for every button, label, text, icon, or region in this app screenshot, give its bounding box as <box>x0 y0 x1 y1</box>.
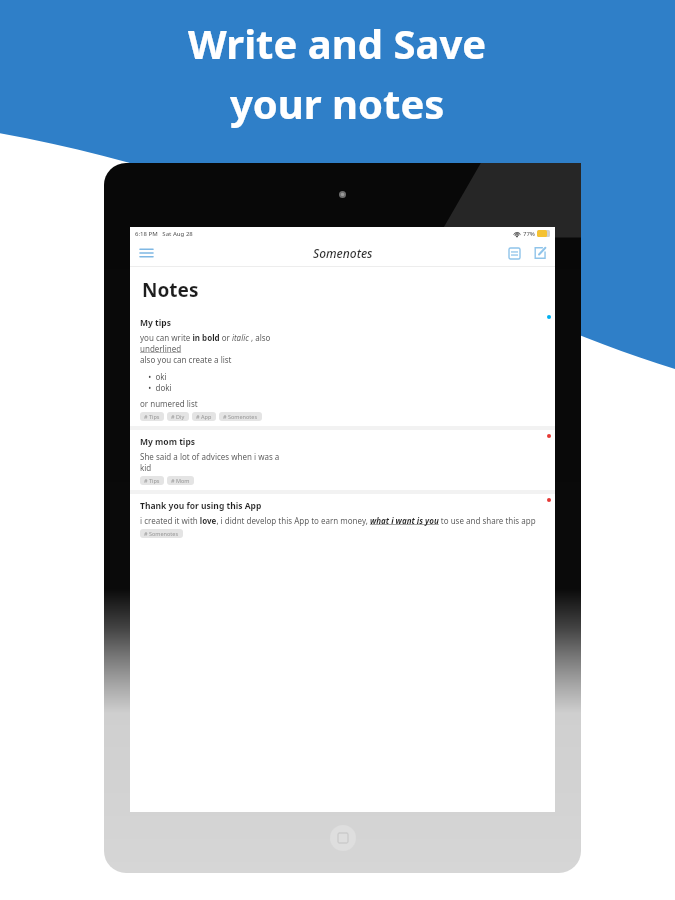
button[interactable]: New note <box>530 243 550 263</box>
staticText: Somenotes <box>313 245 373 261</box>
staticText: also you can create a list <box>140 354 232 365</box>
staticText: you can write in bold or italic , also <box>140 332 271 343</box>
button[interactable]: Thank you for using this App <box>130 494 555 543</box>
staticText: Write and Save <box>188 16 487 70</box>
button[interactable]: My tips <box>130 311 555 426</box>
staticText: • oki <box>140 371 167 382</box>
button[interactable]: # Somenotes <box>140 529 183 538</box>
staticText: underlined <box>140 343 182 354</box>
staticText: # Somenotes <box>223 413 258 420</box>
staticText: My tips <box>140 317 171 329</box>
staticText: # Mom <box>171 477 190 484</box>
staticText: or numered list <box>140 398 198 409</box>
staticText: Thank you for using this App <box>140 500 262 512</box>
button[interactable]: List view <box>504 243 524 263</box>
staticText: i created it with love, i didnt develop … <box>140 515 536 526</box>
staticText: # Somenotes <box>144 530 179 537</box>
button[interactable]: # Mom <box>167 476 194 485</box>
staticText: Notes <box>142 277 199 303</box>
button[interactable]: Home <box>330 825 356 851</box>
button[interactable]: # Tips <box>140 476 164 485</box>
button[interactable]: My mom tips <box>130 430 555 490</box>
staticText: 6:18 PM Sat Aug 28 <box>135 230 193 238</box>
button[interactable]: # App <box>192 412 216 421</box>
staticText: kid <box>140 462 152 473</box>
button[interactable]: # Diy <box>167 412 189 421</box>
staticText: She said a lot of advices when i was a <box>140 451 280 462</box>
staticText: # Tips <box>144 477 160 484</box>
staticText: your notes <box>230 76 445 130</box>
staticText: 77% <box>523 230 535 238</box>
staticText: # App <box>196 413 212 420</box>
staticText: • doki <box>140 382 172 393</box>
button[interactable]: # Somenotes <box>219 412 262 421</box>
button[interactable]: # Tips <box>140 412 164 421</box>
staticText: # Tips <box>144 413 160 420</box>
button[interactable]: Menu <box>136 243 156 263</box>
staticText: My mom tips <box>140 436 196 448</box>
staticText: # Diy <box>171 413 185 420</box>
